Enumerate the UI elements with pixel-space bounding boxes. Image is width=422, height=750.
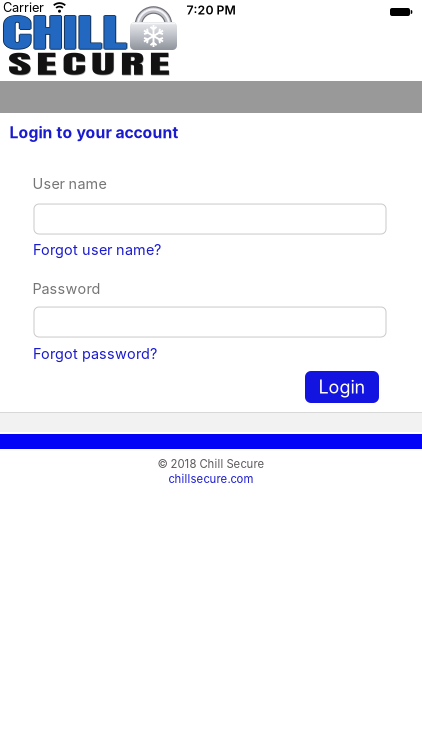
staticText: CHILL (2, 6, 127, 101)
staticText: CHILL (1, 4, 126, 99)
staticText: Login to your account (9, 123, 178, 142)
staticText: E (36, 44, 57, 121)
staticText: © 2018 Chill Secure (157, 457, 264, 471)
staticText: S (8, 44, 31, 121)
staticText: CHILL (2, 3, 127, 98)
staticText: Login (318, 376, 365, 398)
staticText: U (91, 44, 115, 121)
staticText: E (150, 46, 171, 123)
staticText: Forgot password? (33, 345, 157, 362)
staticText: User name (32, 175, 106, 192)
staticText: C (63, 46, 87, 123)
staticText: Password (32, 280, 100, 297)
staticText: R (120, 44, 144, 121)
staticText: E (149, 44, 170, 121)
staticText: C (62, 44, 86, 121)
staticText: chillsecure.com (168, 472, 253, 486)
staticText: U (92, 46, 116, 123)
staticText: Forgot user name? (33, 241, 161, 258)
staticText: CHILL (2, 4, 127, 99)
staticText: E (37, 46, 58, 123)
staticText: Carrier (3, 0, 44, 15)
staticText: S (9, 46, 32, 123)
staticText: 7:20 PM (186, 2, 235, 17)
staticText: CHILL (3, 4, 128, 99)
staticText: R (121, 46, 145, 123)
